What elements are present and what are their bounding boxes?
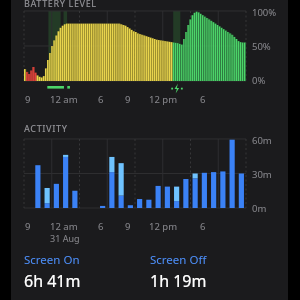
staticText: 6h 41m bbox=[24, 270, 81, 292]
staticText: 30m bbox=[252, 168, 272, 181]
staticText: 9 bbox=[125, 220, 131, 233]
staticText: Screen On bbox=[24, 252, 80, 268]
staticText: 6 bbox=[98, 220, 104, 233]
staticText: 12 pm bbox=[149, 93, 178, 106]
staticText: 6 bbox=[200, 93, 206, 106]
staticText: Screen Off bbox=[150, 252, 207, 268]
button[interactable]: Screen Off bbox=[150, 252, 276, 292]
staticText: 50% bbox=[252, 40, 271, 53]
staticText: 60m bbox=[252, 134, 272, 147]
staticText: ACTIVITY bbox=[24, 122, 68, 134]
staticText: 12 pm bbox=[149, 220, 178, 233]
staticText: 31 Aug bbox=[50, 232, 80, 244]
staticText: 9 bbox=[25, 93, 31, 106]
staticText: 100% bbox=[252, 6, 277, 19]
staticText: 1h 19m bbox=[150, 270, 207, 292]
staticText: 6 bbox=[98, 93, 104, 106]
button[interactable] bbox=[24, 139, 246, 208]
staticText: 9 bbox=[25, 220, 31, 233]
staticText: 0m bbox=[252, 202, 267, 215]
staticText: 0% bbox=[252, 74, 266, 87]
staticText: BATTERY LEVEL bbox=[24, 0, 97, 9]
staticText: 12 am bbox=[50, 220, 78, 233]
button[interactable] bbox=[24, 11, 246, 81]
staticText: 12 am bbox=[50, 93, 78, 106]
staticText: 9 bbox=[125, 93, 131, 106]
button[interactable]: Screen On bbox=[24, 252, 150, 292]
staticText: 6 bbox=[200, 220, 206, 233]
